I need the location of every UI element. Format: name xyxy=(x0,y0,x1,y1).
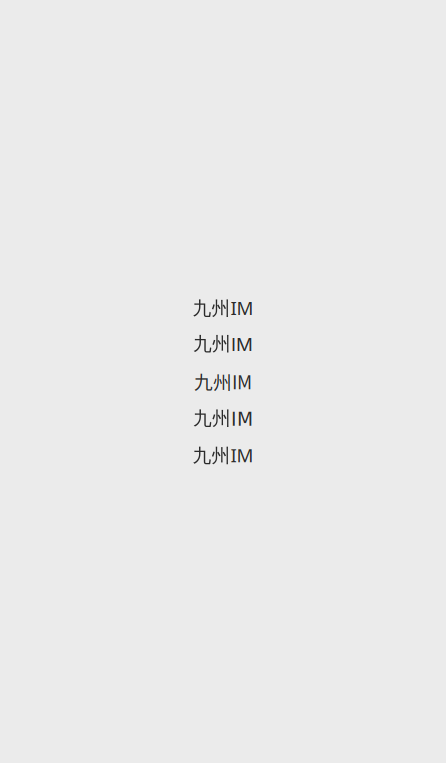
staticText: 九州IM xyxy=(193,407,253,430)
staticText: 九州IM xyxy=(194,368,252,395)
staticText: 九州IM xyxy=(192,295,253,320)
staticText: 九州IM xyxy=(193,332,253,356)
staticText: 九州IM xyxy=(192,442,253,468)
